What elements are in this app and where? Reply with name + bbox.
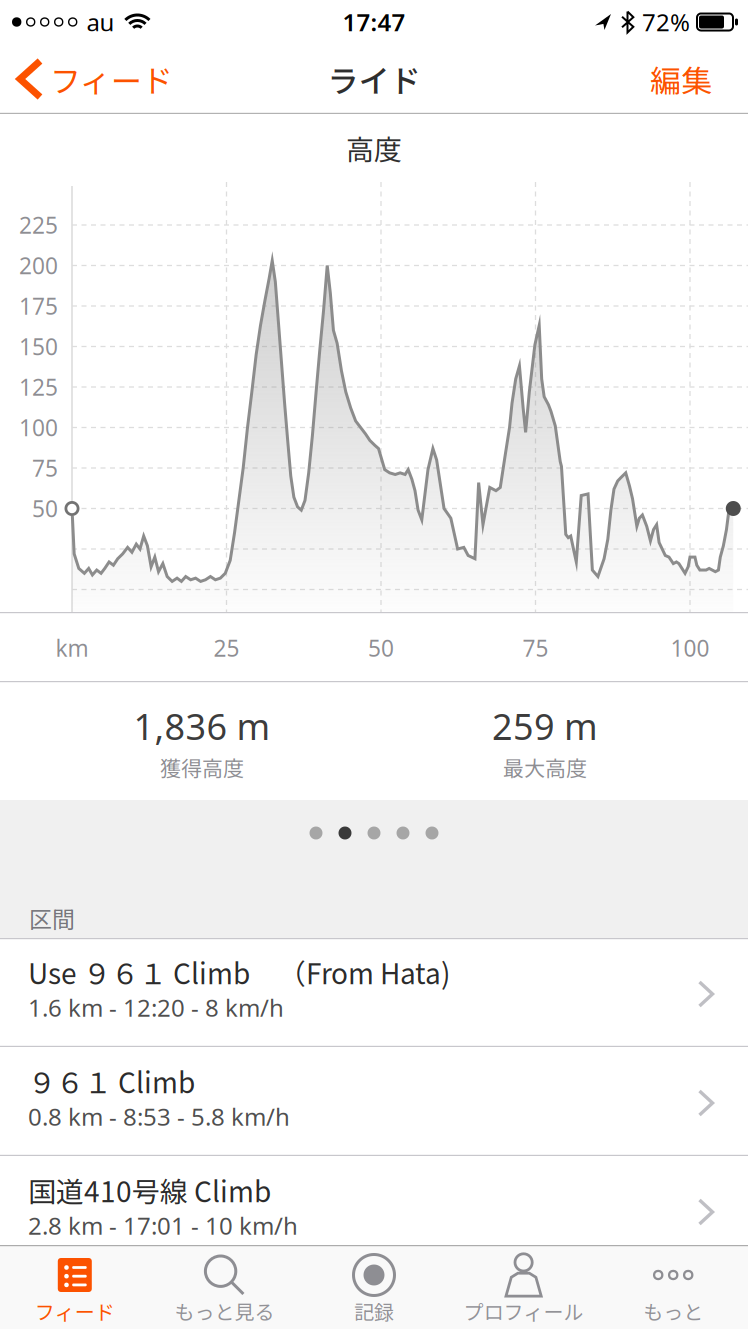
staticText: ライド: [327, 57, 420, 101]
staticText: 区間: [29, 901, 75, 935]
staticText: 50: [32, 493, 58, 523]
staticText: 100: [670, 633, 709, 663]
staticText: 72%: [642, 6, 690, 38]
staticText: フィード: [50, 57, 173, 101]
staticText: 75: [32, 453, 58, 483]
staticText: au: [86, 6, 114, 38]
staticText: 記録: [354, 1296, 394, 1325]
button[interactable]: もっと: [598, 1245, 748, 1329]
staticText: 高度: [346, 128, 402, 168]
staticText: Use ９６１ Climb （From Hata): [28, 952, 450, 992]
staticText: 1,836 m: [133, 702, 270, 750]
button[interactable]: 記録: [299, 1245, 449, 1329]
staticText: 最大高度: [503, 752, 587, 782]
staticText: 75: [522, 633, 548, 663]
staticText: 0.8 km - 8:53 - 5.8 km/h: [28, 1101, 290, 1132]
button[interactable]: 国道410号線 Climb: [0, 1156, 748, 1265]
staticText: 50: [368, 633, 394, 663]
staticText: 259 m: [492, 702, 598, 750]
staticText: 200: [19, 250, 58, 280]
staticText: 225: [19, 210, 58, 240]
staticText: 1.6 km - 12:20 - 8 km/h: [28, 992, 284, 1023]
button[interactable]: ９６１ Climb: [0, 1047, 748, 1156]
staticText: ９６１ Climb: [28, 1061, 195, 1101]
staticText: もっと見る: [174, 1296, 274, 1325]
staticText: 175: [19, 291, 58, 321]
staticText: 150: [19, 331, 58, 361]
button[interactable]: もっと見る: [150, 1245, 299, 1329]
button[interactable]: フィード: [0, 1245, 150, 1329]
staticText: 25: [213, 633, 239, 663]
staticText: 125: [19, 372, 58, 402]
staticText: km: [55, 633, 88, 663]
staticText: フィード: [35, 1296, 115, 1325]
button[interactable]: プロフィール: [449, 1245, 598, 1329]
staticText: 獲得高度: [160, 752, 244, 782]
staticText: 2.8 km - 17:01 - 10 km/h: [28, 1210, 298, 1241]
staticText: 国道410号線 Climb: [28, 1170, 271, 1210]
button[interactable]: フィード: [0, 57, 173, 101]
staticText: もっと: [643, 1296, 703, 1325]
staticText: 17:47: [342, 6, 405, 38]
staticText: プロフィール: [464, 1296, 584, 1325]
staticText: 100: [19, 412, 58, 442]
button[interactable]: Use ９６１ Climb （From Hata): [0, 938, 748, 1047]
staticText: 編集: [650, 57, 712, 101]
button[interactable]: 編集: [650, 57, 748, 101]
